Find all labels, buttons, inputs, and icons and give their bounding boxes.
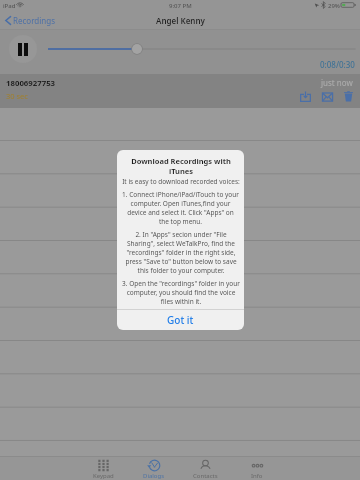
staticText: Angel Kenny <box>156 15 205 26</box>
button[interactable]: Keypad <box>82 459 124 480</box>
staticText: It is easy to download recorded voices: <box>122 177 240 186</box>
button[interactable]: Info <box>236 459 278 480</box>
button[interactable]: 18006927753 <box>0 74 360 108</box>
button[interactable]: Delete recording <box>341 89 355 103</box>
button[interactable]: Recordings <box>0 15 63 26</box>
staticText: Download Recordings with iTunes <box>131 156 231 176</box>
staticText: Info <box>251 472 263 480</box>
staticText: Dialogs <box>143 472 165 480</box>
staticText: 2. In "Apps" secion under "File Sharing"… <box>125 230 237 275</box>
button[interactable]: Email recording <box>320 89 334 103</box>
staticText: Recordings <box>13 15 55 26</box>
staticText: 0:08/0:30 <box>320 59 355 70</box>
staticText: 29% <box>328 2 340 10</box>
button[interactable]: Pause <box>9 35 37 63</box>
staticText: 3. Open the "recordings" folder in your … <box>122 279 240 306</box>
staticText: 30 sec <box>6 91 28 101</box>
button[interactable]: Contacts <box>184 459 226 480</box>
button[interactable]: Dialogs <box>133 459 175 480</box>
staticText: Keypad <box>93 472 114 480</box>
staticText: iPad <box>3 2 16 10</box>
staticText: 1. Connect iPhone/iPad/iTouch to your co… <box>122 190 239 226</box>
staticText: 18006927753 <box>6 78 56 89</box>
button[interactable]: Save recording <box>298 89 312 103</box>
button[interactable]: Got it <box>117 310 244 330</box>
staticText: just now <box>321 77 353 88</box>
staticText: Contacts <box>193 472 218 480</box>
staticText: Got it <box>167 313 194 327</box>
staticText: 9:07 PM <box>169 2 192 10</box>
